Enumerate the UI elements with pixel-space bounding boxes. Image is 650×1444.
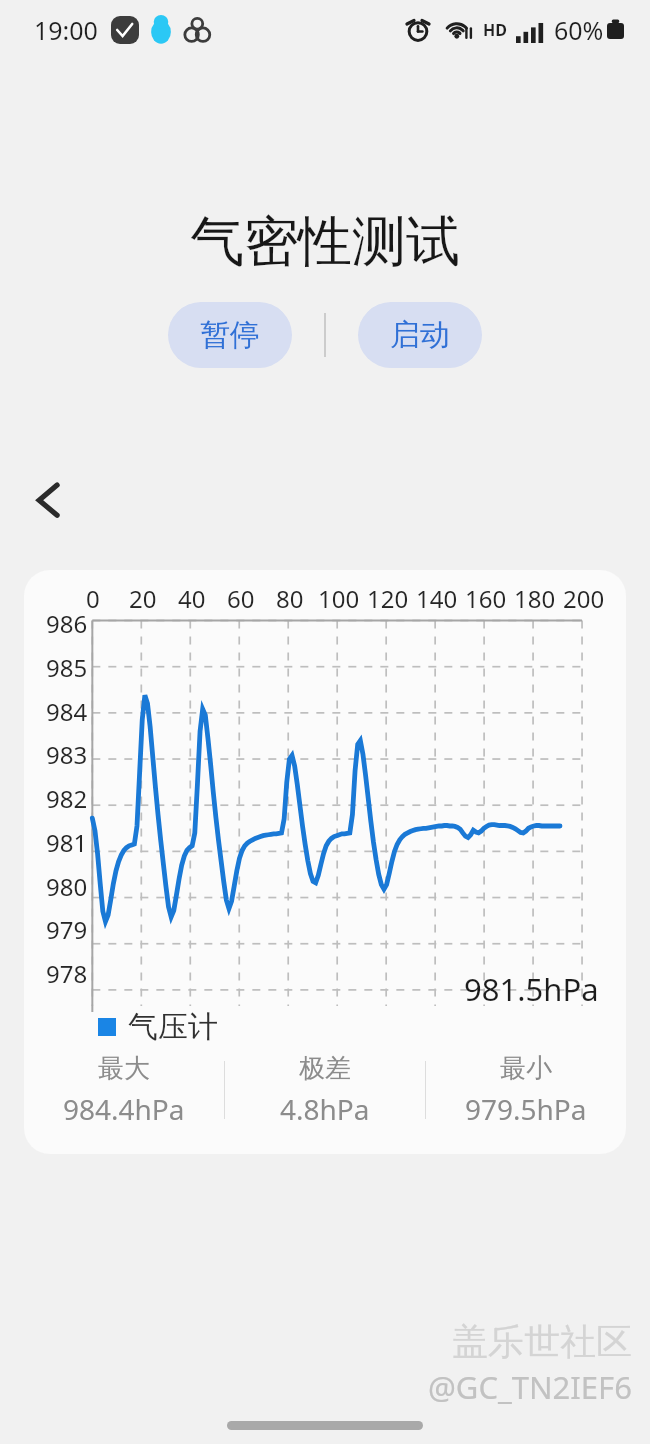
staticText: 981.5hPa <box>464 968 599 1010</box>
staticText: 暂停 <box>200 316 260 354</box>
staticText: 978 <box>46 957 88 990</box>
staticText: 100 <box>318 582 360 615</box>
staticText: 盖乐世社区 <box>452 1319 632 1364</box>
staticText: 981 <box>46 826 88 859</box>
button[interactable]: Back <box>20 470 78 528</box>
staticText: 982 <box>46 782 88 815</box>
staticText: 979.5hPa <box>465 1090 587 1128</box>
staticText: 979 <box>46 913 88 946</box>
staticText: 120 <box>367 582 409 615</box>
staticText: 80 <box>276 582 304 615</box>
staticText: HD <box>483 19 507 41</box>
staticText: 40 <box>178 582 206 615</box>
staticText: 180 <box>514 582 556 615</box>
button[interactable]: 启动 <box>358 302 482 368</box>
staticText: 最大 <box>98 1052 150 1085</box>
staticText: 984.4hPa <box>63 1090 185 1128</box>
staticText: 4.8hPa <box>280 1090 370 1128</box>
staticText: 140 <box>416 582 458 615</box>
staticText: 60 <box>227 582 255 615</box>
staticText: 20 <box>129 582 157 615</box>
staticText: 984 <box>46 695 88 728</box>
button[interactable]: 0 <box>24 570 626 1154</box>
button[interactable]: 暂停 <box>168 302 292 368</box>
staticText: 气压计 <box>128 1008 218 1046</box>
staticText: 启动 <box>390 316 450 354</box>
staticText: 980 <box>46 870 88 903</box>
staticText: 60% <box>554 13 604 47</box>
staticText: 19:00 <box>34 13 98 47</box>
staticText: 极差 <box>299 1052 351 1085</box>
staticText: 最小 <box>500 1052 552 1085</box>
staticText: 气密性测试 <box>0 208 650 276</box>
staticText: 200 <box>563 582 605 615</box>
staticText: 986 <box>46 607 88 640</box>
staticText: 985 <box>46 651 88 684</box>
staticText: 0 <box>86 582 100 615</box>
staticText: 160 <box>465 582 507 615</box>
staticText: @GC_TN2IEF6 <box>428 1366 632 1408</box>
staticText: 983 <box>46 738 88 771</box>
